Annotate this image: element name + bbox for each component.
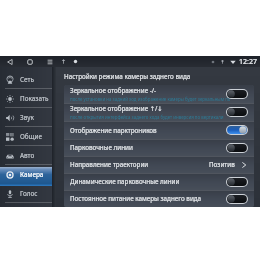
button[interactable]: Зеркальное отображение -/- — [64, 85, 254, 103]
button[interactable]: Disabled — [226, 143, 248, 153]
button[interactable]: Позитив — [209, 160, 248, 169]
staticText: Отображение парктроников — [70, 126, 157, 135]
staticText: Камера — [20, 170, 44, 179]
button[interactable]: Направление траектории — [64, 156, 254, 173]
button[interactable]: Disabled — [226, 194, 248, 204]
staticText: Позитив — [209, 160, 235, 169]
staticText: Сеть — [20, 75, 35, 84]
staticText: Постоянное питание камеры заднего вида — [70, 194, 202, 203]
staticText: Звук — [20, 113, 34, 122]
staticText: Зеркальное отображение ↑/↓ — [70, 104, 163, 113]
staticText: после открытия интерфейса заднего хода б… — [70, 114, 224, 120]
button[interactable]: Парковочные линии — [64, 139, 254, 156]
button[interactable]: Голос — [0, 184, 53, 203]
staticText: Динамические парковочные линии — [70, 177, 180, 186]
staticText: 12:27 — [239, 57, 257, 67]
staticText: Настройки режима камеры заднего вида — [64, 72, 191, 81]
staticText: Показать — [20, 94, 49, 103]
button[interactable]: Disabled — [226, 107, 248, 117]
button[interactable]: Общие — [0, 127, 53, 146]
button[interactable]: Disabled — [226, 177, 248, 187]
staticText: Направление траектории — [70, 160, 149, 169]
staticText: после установки на задний ход изображени… — [70, 96, 254, 102]
staticText: Авто — [20, 151, 35, 160]
button[interactable]: Recent apps — [44, 56, 55, 67]
staticText: Парковочные линии — [70, 143, 133, 152]
button[interactable]: Камера — [0, 165, 53, 184]
button[interactable]: Home — [24, 56, 35, 67]
button[interactable]: Back — [4, 56, 15, 67]
button[interactable]: Динамические парковочные линии — [64, 173, 254, 190]
button[interactable]: Disabled — [226, 89, 248, 99]
button[interactable]: Авто — [0, 146, 53, 165]
button[interactable]: Enabled — [226, 125, 248, 135]
button[interactable]: Показать — [0, 89, 53, 108]
button[interactable]: Постоянное питание камеры заднего вида — [64, 190, 254, 207]
staticText: Голос — [20, 189, 38, 198]
button[interactable]: Зеркальное отображение ↑/↓ — [64, 103, 254, 121]
staticText: Зеркальное отображение -/- — [70, 86, 157, 95]
button[interactable]: Отображение парктроников — [64, 121, 254, 139]
button[interactable]: Сеть — [0, 70, 53, 89]
staticText: Общие — [20, 132, 42, 141]
button[interactable]: Звук — [0, 108, 53, 127]
